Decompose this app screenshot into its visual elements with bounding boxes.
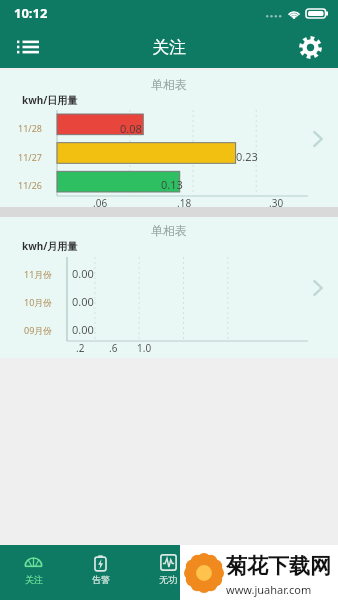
staticText: 0.00 [72, 266, 94, 281]
button[interactable]: Settings [290, 27, 330, 67]
staticText: 关注 [25, 574, 43, 585]
staticText: .18 [177, 196, 192, 210]
staticText: 告警 [92, 574, 110, 585]
staticText: 单相表 [151, 223, 187, 238]
staticText: .06 [93, 196, 108, 210]
button[interactable]: Menu [8, 27, 48, 67]
staticText: .30 [269, 196, 284, 210]
staticText: 0.08 [120, 121, 142, 136]
button[interactable]: 告警 [67, 545, 134, 600]
staticText: kwh/日用量 [22, 93, 78, 107]
button[interactable]: 无功 [134, 545, 202, 600]
staticText: 菊花下载网 [226, 553, 331, 579]
button[interactable]: More daily usage [303, 125, 331, 153]
button[interactable]: 有功 [202, 545, 270, 600]
staticText: 10月份 [24, 296, 53, 308]
staticText: 09月份 [24, 324, 53, 336]
staticText: 11/28 [18, 122, 42, 134]
staticText: 无功 [159, 574, 177, 585]
staticText: 0.00 [72, 294, 94, 309]
staticText: 11/27 [18, 151, 42, 163]
staticText: www.juahar.com [226, 582, 312, 597]
staticText: 0.23 [236, 149, 258, 164]
button[interactable]: More monthly usage [303, 274, 331, 302]
staticText: 11/26 [18, 179, 42, 191]
button[interactable]: 单相表 [0, 70, 338, 207]
button[interactable]: 单相表 [0, 217, 338, 358]
staticText: kwh/月用量 [22, 239, 78, 253]
staticText: 关注 [152, 37, 186, 58]
staticText: 有功 [227, 574, 245, 585]
staticText: 10:12 [14, 4, 48, 22]
button[interactable]: 我的 [270, 545, 338, 600]
button[interactable]: 关注 [0, 545, 67, 600]
staticText: 0.00 [72, 322, 94, 337]
staticText: .2 [76, 341, 85, 355]
staticText: 11月份 [24, 268, 53, 280]
staticText: 0.13 [161, 177, 183, 192]
staticText: 1.0 [137, 341, 152, 355]
staticText: 我的 [295, 574, 313, 585]
staticText: .6 [109, 341, 118, 355]
staticText: 单相表 [151, 77, 187, 92]
